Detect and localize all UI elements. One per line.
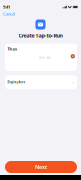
staticText: Create Tap-to-Run xyxy=(18,32,62,39)
staticText: Add Task xyxy=(39,56,50,59)
button[interactable]: Next xyxy=(0,161,81,173)
staticText: Next xyxy=(35,163,47,171)
staticText: › xyxy=(72,79,74,86)
staticText: Cancel xyxy=(3,11,15,17)
staticText: Display Area xyxy=(7,80,25,84)
staticText: 9:41 xyxy=(3,4,10,10)
button[interactable]: Display Area xyxy=(0,75,81,89)
staticText: Then xyxy=(7,46,17,52)
button[interactable]: Cancel xyxy=(0,10,18,17)
